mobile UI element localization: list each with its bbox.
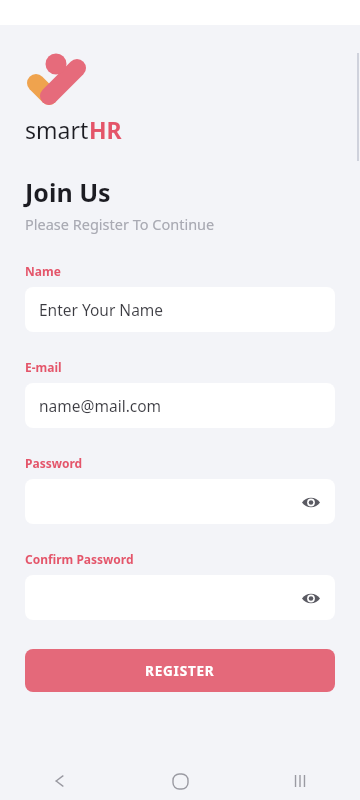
staticText: Password	[25, 455, 83, 471]
staticText: E-mail	[25, 359, 62, 375]
staticText: Please Register To Continue	[25, 214, 215, 234]
button[interactable]: Enter Your Name	[25, 287, 335, 332]
staticText: name@mail.com	[39, 395, 162, 416]
staticText: Confirm Password	[25, 551, 134, 567]
staticText: Join Us	[25, 175, 111, 209]
staticText: Name	[25, 263, 61, 279]
button[interactable]: Show confirm password	[25, 575, 335, 620]
button[interactable]: Show password	[25, 479, 335, 524]
staticText: smart	[25, 114, 89, 145]
button[interactable]: Show password	[297, 488, 325, 516]
staticText: Enter Your Name	[39, 299, 164, 320]
button[interactable]: Recent apps	[240, 762, 360, 800]
button[interactable]: Show confirm password	[297, 584, 325, 612]
staticText: HR	[89, 114, 122, 145]
staticText: REGISTER	[145, 662, 215, 680]
button[interactable]: REGISTER	[25, 649, 335, 692]
button[interactable]: Back	[0, 762, 120, 800]
button[interactable]: Home	[120, 762, 240, 800]
button[interactable]: name@mail.com	[25, 383, 335, 428]
